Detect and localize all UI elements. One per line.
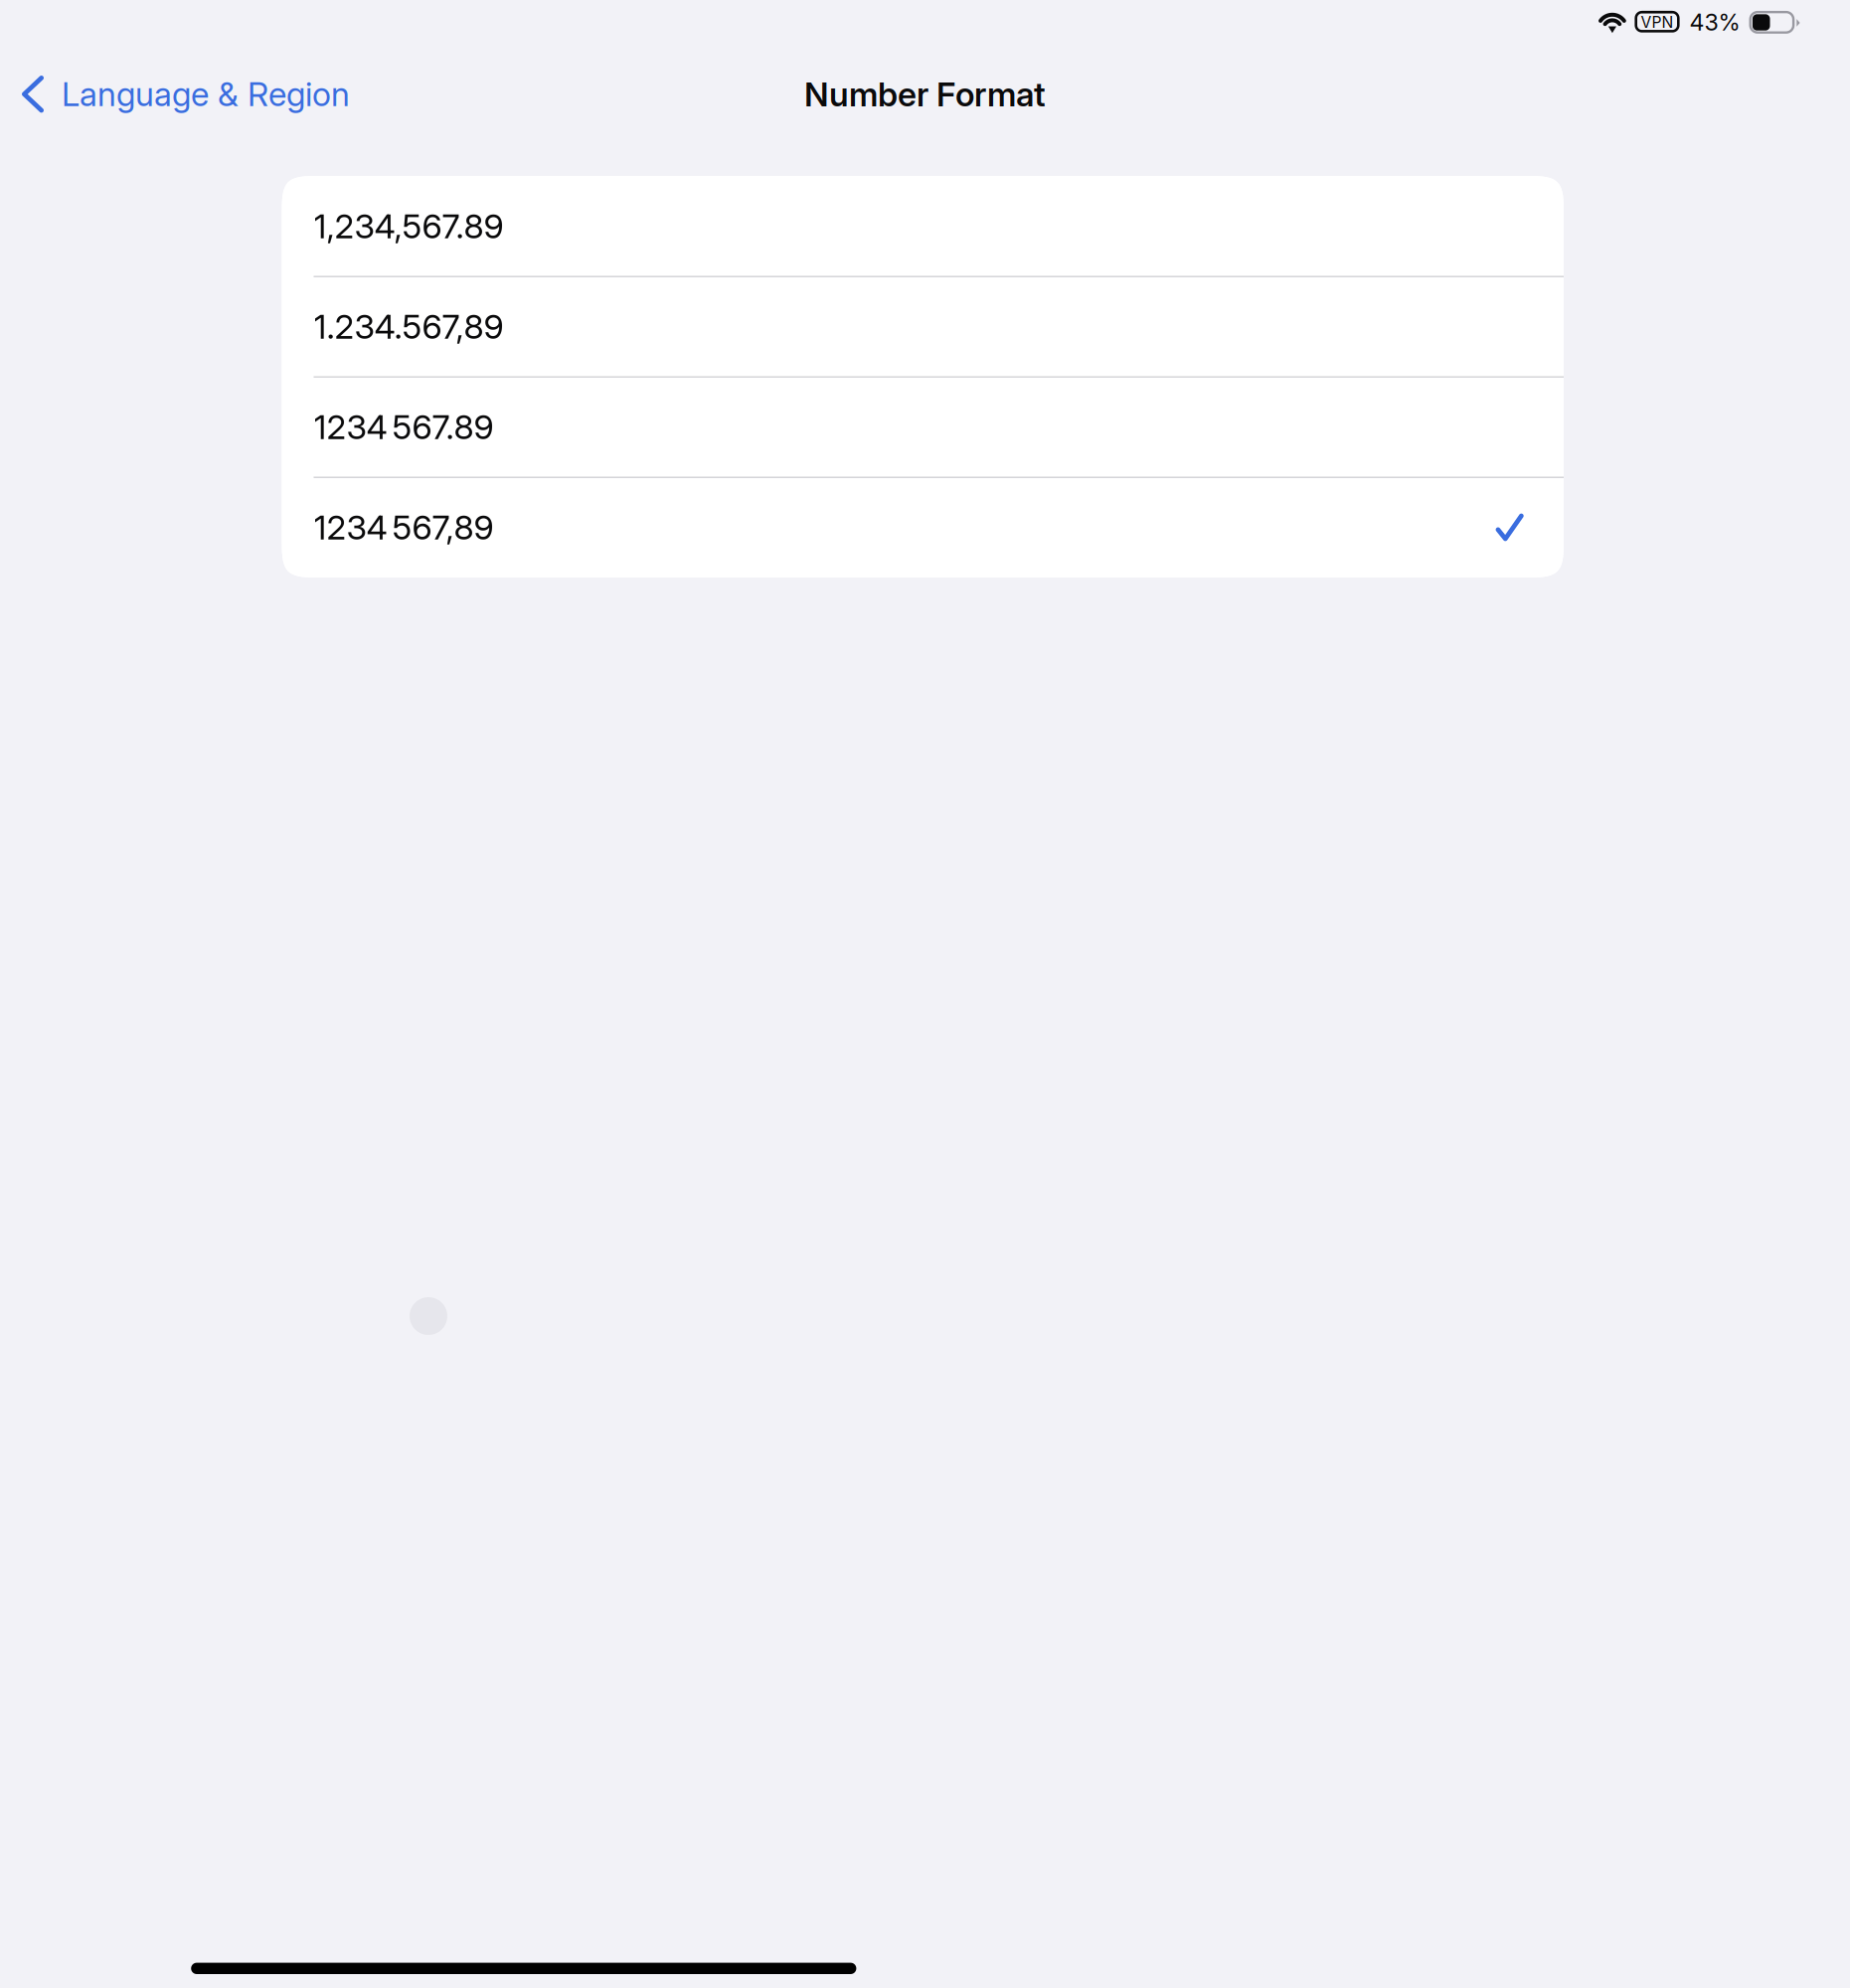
button[interactable]: 1234 567,89 bbox=[282, 477, 1564, 578]
staticText: 1.234.567,89 bbox=[314, 306, 504, 347]
staticText: 1234 567.89 bbox=[314, 407, 494, 447]
staticText: VPN bbox=[1641, 13, 1674, 32]
staticText: Language & Region bbox=[62, 74, 350, 114]
staticText: 43% bbox=[1689, 8, 1740, 36]
staticText: 1234 567,89 bbox=[314, 507, 494, 548]
button[interactable]: 1.234.567,89 bbox=[282, 276, 1564, 377]
staticText: 1,234,567.89 bbox=[314, 206, 504, 247]
button[interactable]: Language & Region bbox=[0, 67, 372, 121]
staticText: Number Format bbox=[804, 74, 1046, 114]
button[interactable]: 1234 567.89 bbox=[282, 377, 1564, 477]
button[interactable]: 1,234,567.89 bbox=[282, 176, 1564, 276]
